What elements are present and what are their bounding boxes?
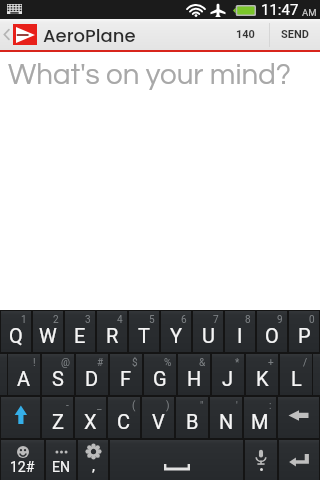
button[interactable]: Q — [1, 311, 31, 352]
staticText: " — [200, 400, 204, 412]
staticText: EN — [52, 459, 70, 475]
staticText: K — [256, 367, 269, 390]
staticText: S — [52, 367, 64, 390]
staticText: B — [186, 410, 199, 433]
staticText: - — [66, 400, 69, 412]
button[interactable]: Shift — [1, 397, 40, 438]
button[interactable]: K — [246, 354, 278, 395]
staticText: 4 — [117, 314, 123, 326]
staticText: 12# — [10, 459, 35, 475]
staticText: @ — [61, 357, 70, 369]
button[interactable]: R — [97, 311, 127, 352]
staticText: A — [17, 367, 31, 390]
staticText: 140 — [236, 28, 255, 41]
staticText: X — [84, 410, 97, 433]
staticText: ( — [132, 400, 136, 412]
staticText: D — [85, 367, 99, 390]
staticText: G — [153, 367, 167, 390]
staticText: N — [219, 410, 234, 433]
button[interactable]: Z — [42, 397, 73, 438]
button[interactable]: Voice input — [245, 440, 277, 480]
staticText: 3 — [85, 314, 91, 326]
staticText: 11:47 — [261, 1, 299, 19]
staticText: J — [222, 367, 234, 390]
staticText: 1 — [21, 314, 27, 326]
staticText: AeroPlane — [43, 23, 136, 48]
button[interactable]: J — [212, 354, 244, 395]
button[interactable]: E — [65, 311, 95, 352]
button[interactable]: X — [75, 397, 106, 438]
staticText: F — [120, 367, 132, 390]
staticText: What's on your mind? — [8, 60, 291, 90]
button[interactable]: Back — [0, 19, 136, 50]
button[interactable]: Backspace — [278, 397, 319, 438]
button[interactable]: L — [280, 354, 312, 395]
staticText: W — [39, 324, 57, 347]
staticText: O — [265, 324, 279, 347]
staticText: H — [187, 367, 202, 390]
staticText: SEND — [281, 28, 309, 41]
button[interactable]: O — [257, 311, 287, 352]
staticText: L — [291, 367, 302, 390]
button[interactable]: Language — [46, 440, 76, 480]
staticText: 9 — [277, 314, 283, 326]
staticText: 7 — [213, 314, 219, 326]
staticText: Z — [52, 410, 64, 433]
button[interactable]: V — [142, 397, 174, 438]
button[interactable]: C — [108, 397, 140, 438]
button[interactable]: Settings — [78, 440, 108, 480]
staticText: ) — [166, 400, 170, 412]
button[interactable]: Y — [161, 311, 191, 352]
button[interactable]: SEND — [270, 19, 320, 50]
staticText: 0 — [309, 314, 315, 326]
staticText: C — [117, 410, 131, 433]
other: Back — [3, 27, 10, 42]
button[interactable]: Enter — [279, 440, 319, 480]
button[interactable]: U — [193, 311, 223, 352]
button[interactable]: S — [42, 354, 74, 395]
staticText: R — [106, 324, 119, 347]
button[interactable]: I — [225, 311, 255, 352]
staticText: / — [303, 357, 308, 369]
staticText: 8 — [245, 314, 251, 326]
staticText: * — [235, 357, 240, 369]
button[interactable]: M — [244, 397, 276, 438]
staticText: E — [74, 324, 86, 347]
staticText: Q — [9, 324, 23, 347]
button[interactable]: B — [176, 397, 208, 438]
staticText: T — [138, 324, 150, 347]
button[interactable]: A — [8, 354, 40, 395]
button[interactable]: F — [110, 354, 142, 395]
staticText: AM — [302, 7, 317, 18]
button[interactable]: Symbols — [1, 440, 44, 480]
staticText: U — [202, 324, 215, 347]
staticText: & — [199, 357, 206, 369]
staticText: # — [97, 357, 104, 369]
staticText: P — [298, 324, 311, 347]
staticText: 2 — [53, 314, 59, 326]
button[interactable]: Space — [110, 440, 243, 480]
staticText: : — [269, 400, 272, 412]
button[interactable]: N — [210, 397, 242, 438]
button[interactable]: T — [129, 311, 159, 352]
button[interactable]: D — [76, 354, 108, 395]
staticText: , — [92, 457, 95, 475]
staticText: M — [251, 410, 269, 433]
staticText: _ — [97, 400, 102, 412]
button[interactable]: G — [144, 354, 176, 395]
button[interactable]: 140 — [222, 19, 269, 50]
staticText: % — [164, 357, 172, 369]
button[interactable]: P — [289, 311, 319, 352]
staticText: V — [152, 410, 165, 433]
staticText: 6 — [181, 314, 187, 326]
button[interactable]: W — [33, 311, 63, 352]
staticText: I — [237, 324, 243, 347]
staticText: + — [268, 357, 274, 369]
staticText: ! — [33, 357, 36, 369]
staticText: 5 — [149, 314, 155, 326]
staticText: $ — [132, 357, 138, 369]
button[interactable]: H — [178, 354, 210, 395]
staticText: Y — [170, 324, 183, 347]
